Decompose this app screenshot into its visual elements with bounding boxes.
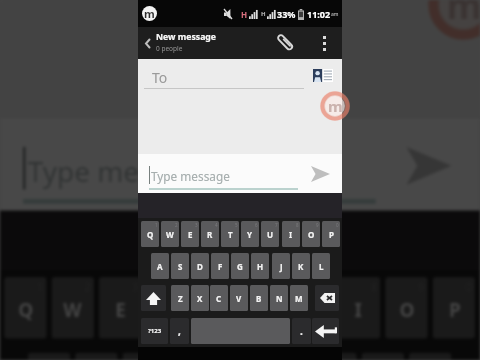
button[interactable]: B xyxy=(250,285,268,311)
button[interactable]: Backspace xyxy=(315,285,339,311)
button[interactable]: E xyxy=(181,221,199,247)
button[interactable]: Attach xyxy=(272,27,298,59)
staticText: 5 xyxy=(227,279,234,294)
button[interactable]: Q xyxy=(4,277,47,339)
staticText: m xyxy=(328,96,343,116)
staticText: G xyxy=(237,261,243,272)
staticText: X xyxy=(197,293,203,304)
button[interactable]: Enter xyxy=(312,318,339,344)
button[interactable]: J xyxy=(272,253,290,279)
staticText: L xyxy=(319,261,324,272)
button[interactable]: More options xyxy=(314,27,334,59)
button[interactable]: ?123 xyxy=(141,318,168,344)
button[interactable]: R xyxy=(146,277,189,339)
staticText: , xyxy=(178,324,181,338)
button[interactable]: T xyxy=(193,277,236,339)
button[interactable]: Choose contact xyxy=(313,69,333,82)
button[interactable]: S xyxy=(171,253,189,279)
button[interactable]: D xyxy=(191,253,209,279)
button[interactable]: K xyxy=(361,353,404,360)
staticText: am xyxy=(331,11,339,18)
button[interactable]: L xyxy=(312,253,330,279)
staticText: W xyxy=(63,296,82,322)
staticText: O xyxy=(308,229,315,240)
staticText: U xyxy=(302,296,319,322)
staticText: Type message xyxy=(151,168,230,184)
staticText: D xyxy=(197,261,203,272)
button[interactable]: I xyxy=(282,221,300,247)
button[interactable]: X xyxy=(191,285,209,311)
button[interactable]: K xyxy=(292,253,310,279)
staticText: Y xyxy=(255,296,269,322)
button[interactable]: A xyxy=(151,253,169,279)
button[interactable]: W xyxy=(51,277,94,339)
button[interactable]: P xyxy=(432,277,475,339)
button[interactable]: I xyxy=(338,277,380,339)
staticText: E xyxy=(115,296,127,322)
button[interactable]: O xyxy=(302,221,320,247)
button[interactable]: Send xyxy=(309,165,332,183)
button[interactable]: Shift xyxy=(141,285,166,311)
button[interactable]: S xyxy=(75,353,118,360)
staticText: To xyxy=(152,68,168,87)
staticText: M xyxy=(295,293,303,304)
button[interactable]: P xyxy=(322,221,340,247)
staticText: C xyxy=(216,293,222,304)
staticText: N xyxy=(276,293,283,304)
button[interactable]: Send xyxy=(402,145,456,187)
staticText: 1 xyxy=(155,222,158,228)
button[interactable]: Y xyxy=(241,277,283,339)
staticText: 4 xyxy=(215,222,218,228)
staticText: 4 xyxy=(179,279,186,294)
staticText: 7 xyxy=(321,279,328,294)
button[interactable]: Z xyxy=(171,285,189,311)
staticText: S xyxy=(178,261,183,272)
button[interactable]: Mobizen overlay xyxy=(320,91,350,121)
button[interactable]: A xyxy=(28,353,70,360)
button[interactable]: F xyxy=(211,253,229,279)
staticText: P xyxy=(329,229,334,240)
button[interactable]: Y xyxy=(241,221,259,247)
staticText: H xyxy=(261,10,266,18)
button[interactable]: C xyxy=(210,285,228,311)
button[interactable]: O xyxy=(385,277,428,339)
button[interactable]: M xyxy=(290,285,308,311)
staticText: 5 xyxy=(235,222,238,228)
button[interactable]: Mobizen overlay xyxy=(428,0,480,40)
button[interactable]: U xyxy=(288,277,331,339)
button[interactable]: D xyxy=(122,353,165,360)
button[interactable]: U xyxy=(261,221,279,247)
button[interactable]: . xyxy=(292,318,311,344)
button[interactable]: G xyxy=(231,253,249,279)
staticText: O xyxy=(399,296,416,322)
button[interactable]: J xyxy=(314,353,357,360)
staticText: R xyxy=(207,229,213,240)
button[interactable]: V xyxy=(230,285,248,311)
staticText: P xyxy=(449,296,461,322)
staticText: m xyxy=(144,6,155,21)
button[interactable]: N xyxy=(270,285,288,311)
staticText: V xyxy=(236,293,242,304)
staticText: 6 xyxy=(274,279,281,294)
staticText: W xyxy=(166,229,174,240)
button[interactable]: L xyxy=(409,353,451,360)
staticText: K xyxy=(298,261,304,272)
staticText: 0 xyxy=(336,222,339,228)
button[interactable]: E xyxy=(99,277,141,339)
button[interactable]: T xyxy=(221,221,239,247)
button[interactable]: Q xyxy=(141,221,159,247)
staticText: U xyxy=(267,229,274,240)
button[interactable]: H xyxy=(251,253,269,279)
button[interactable]: W xyxy=(161,221,179,247)
button[interactable]: Navigate up xyxy=(138,27,156,59)
button[interactable]: R xyxy=(201,221,219,247)
button[interactable]: , xyxy=(170,318,189,344)
staticText: F xyxy=(218,261,223,272)
staticText: T xyxy=(228,229,233,240)
